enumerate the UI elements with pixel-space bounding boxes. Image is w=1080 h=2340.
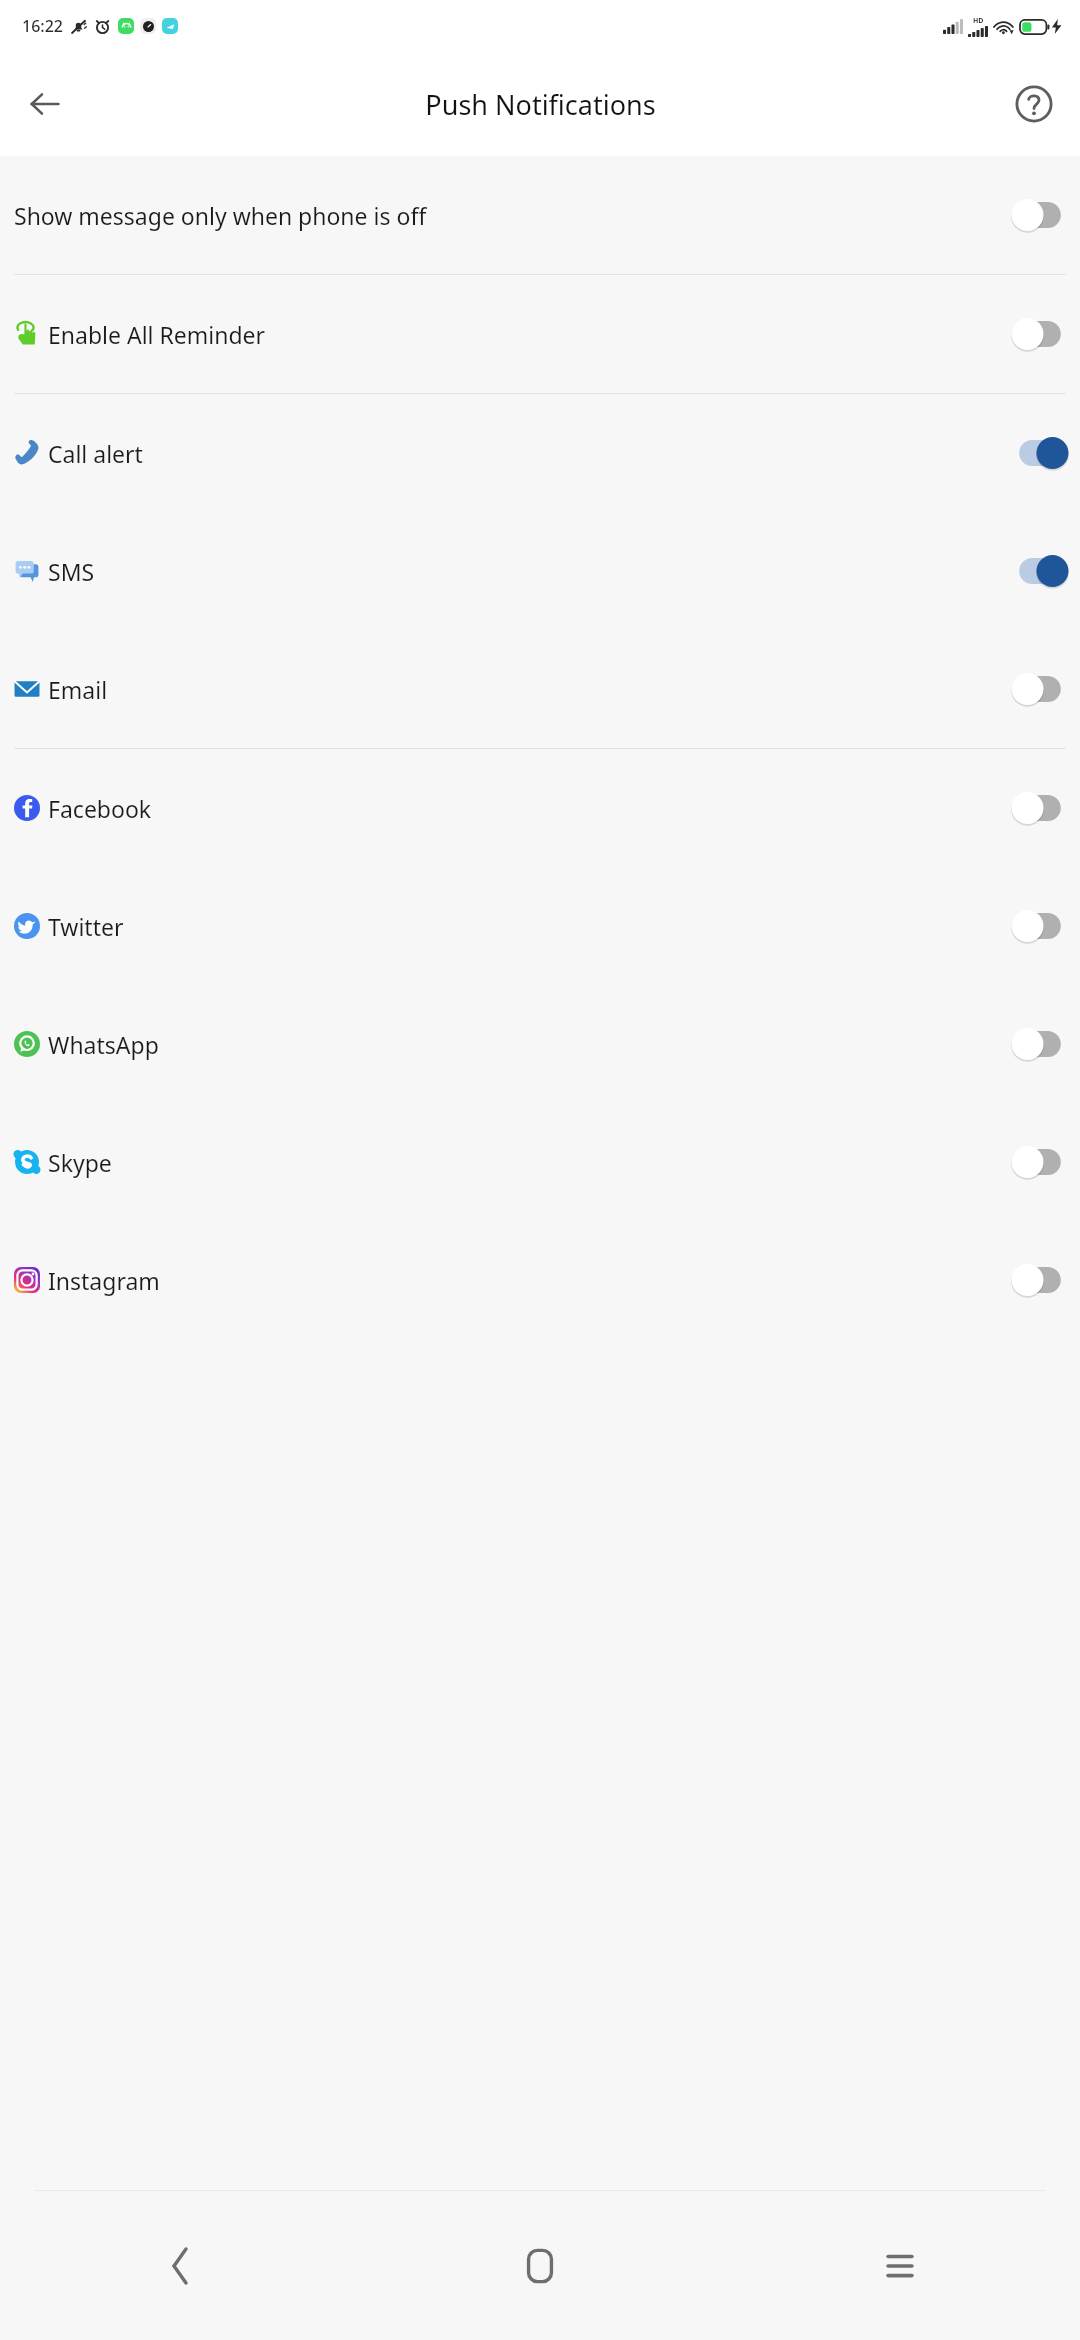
button[interactable]: Off [1014,1264,1066,1296]
button[interactable]: Off [1014,1028,1066,1060]
button[interactable]: Off [1014,792,1066,824]
button[interactable]: Help [1004,74,1064,134]
button[interactable]: Twitter [0,867,1080,985]
staticText: 16:22 [22,15,63,37]
button[interactable]: Off [1014,910,1066,942]
button[interactable]: Call alert [0,394,1080,512]
button[interactable]: Recents [720,2191,1080,2340]
staticText: Twitter [48,911,1004,942]
button[interactable]: Show message only when phone is off [0,156,1080,274]
button[interactable]: Back [14,73,76,135]
staticText: WhatsApp [48,1029,1004,1060]
staticText: HD [973,16,984,26]
button[interactable]: On [1014,437,1066,469]
button[interactable]: Off [1014,1146,1066,1178]
staticText: Push Notifications [425,86,656,123]
staticText: Enable All Reminder [48,319,1004,350]
staticText: Show message only when phone is off [14,200,1004,231]
button[interactable]: Instagram [0,1221,1080,1339]
button[interactable]: WhatsApp [0,985,1080,1103]
button[interactable]: On [1014,555,1066,587]
staticText: Facebook [48,793,1004,824]
staticText: Call alert [48,438,1004,469]
button[interactable]: Back [0,2191,360,2340]
button[interactable]: Email [0,630,1080,748]
staticText: SMS [48,556,1004,587]
button[interactable]: Off [1014,318,1066,350]
staticText: Instagram [48,1265,1004,1296]
button[interactable]: Skype [0,1103,1080,1221]
staticText: Skype [48,1147,1004,1178]
button[interactable]: Off [1014,199,1066,231]
button[interactable]: Enable All Reminder [0,275,1080,393]
staticText: Email [48,674,1004,705]
button[interactable]: Facebook [0,749,1080,867]
button[interactable]: Off [1014,673,1066,705]
button[interactable]: Home [360,2191,720,2340]
button[interactable]: SMS [0,512,1080,630]
